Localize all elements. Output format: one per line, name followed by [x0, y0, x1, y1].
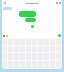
button[interactable]: Send — [58, 34, 61, 37]
button[interactable] — [3, 7, 12, 10]
button[interactable] — [31, 25, 34, 28]
button[interactable] — [19, 11, 36, 17]
button[interactable]: Back — [3, 1, 7, 5]
button[interactable] — [25, 18, 36, 22]
